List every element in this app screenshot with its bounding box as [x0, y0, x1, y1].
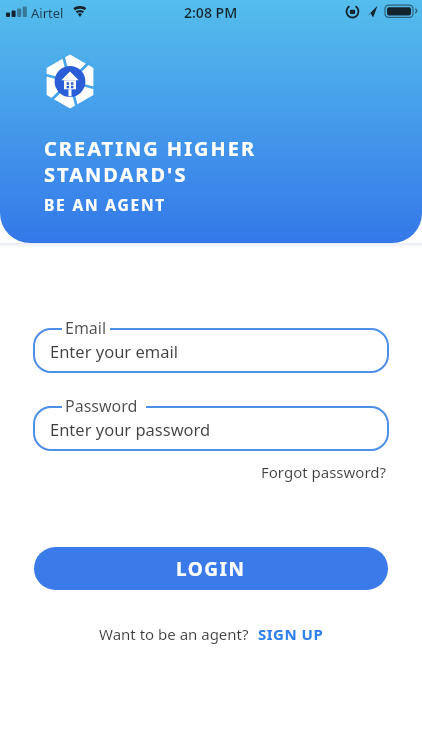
button[interactable]: Forgot password?: [261, 462, 387, 482]
staticText: Password: [65, 395, 138, 417]
staticText: SIGN UP: [258, 624, 324, 644]
button[interactable]: Enter your password: [33, 406, 389, 451]
staticText: 2:08 PM: [184, 3, 238, 22]
button[interactable]: LOGIN: [34, 547, 388, 590]
staticText: Want to be an agent?: [99, 624, 249, 644]
staticText: CREATING HIGHER STANDARD'S: [44, 135, 257, 187]
staticText: Email: [65, 317, 107, 339]
button[interactable]: SIGN UP: [258, 624, 324, 644]
staticText: Enter your password: [50, 418, 211, 440]
button[interactable]: Enter your email: [33, 328, 389, 373]
staticText: Enter your email: [50, 340, 178, 362]
staticText: Airtel: [31, 4, 64, 22]
staticText: LOGIN: [176, 556, 246, 582]
staticText: Forgot password?: [261, 462, 387, 482]
staticText: BE AN AGENT: [44, 194, 167, 215]
